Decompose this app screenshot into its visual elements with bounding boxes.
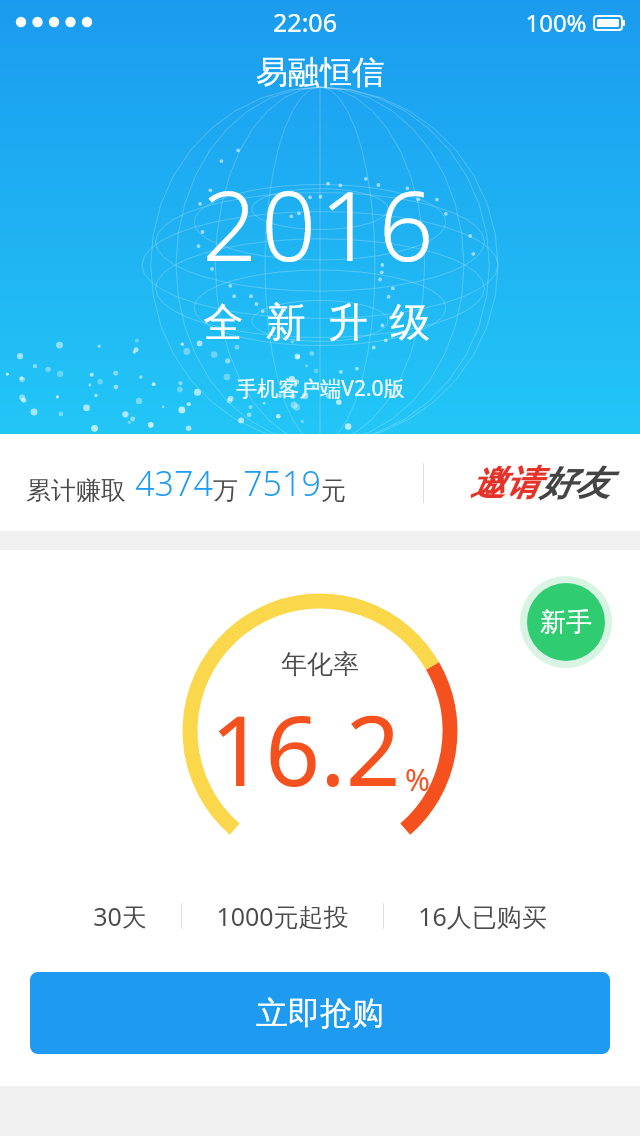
staticText: 好友 xyxy=(540,461,610,505)
staticText: 邀请 xyxy=(470,461,540,505)
staticText: 16.2 xyxy=(210,683,401,814)
staticText: 22:06 xyxy=(273,5,337,39)
button[interactable]: 新手 xyxy=(527,583,605,661)
staticText: 易融恒信 xyxy=(256,52,384,92)
staticText: 立即抢购 xyxy=(256,993,384,1033)
staticText: 全 新 升 级 xyxy=(203,293,437,348)
staticText: 30天 xyxy=(93,899,147,933)
staticText: 16人已购买 xyxy=(418,899,547,933)
staticText: 累计赚取 xyxy=(26,475,126,506)
staticText: % xyxy=(405,759,430,800)
staticText: 年化率 xyxy=(281,648,359,681)
staticText: 2016 xyxy=(202,158,438,289)
staticText: 100% xyxy=(525,6,587,39)
staticText: 手机客户端V2.0版 xyxy=(236,374,405,403)
staticText: 1000元起投 xyxy=(216,899,349,933)
button[interactable]: 邀请 xyxy=(466,455,614,511)
button[interactable]: 累计赚取 xyxy=(0,434,640,531)
button[interactable]: 立即抢购 xyxy=(30,972,610,1054)
staticText: 4374 xyxy=(135,460,213,506)
staticText: 万 xyxy=(213,475,238,506)
staticText: 新手 xyxy=(540,606,592,639)
staticText: 7519 xyxy=(243,460,321,506)
staticText: 元 xyxy=(321,475,346,506)
